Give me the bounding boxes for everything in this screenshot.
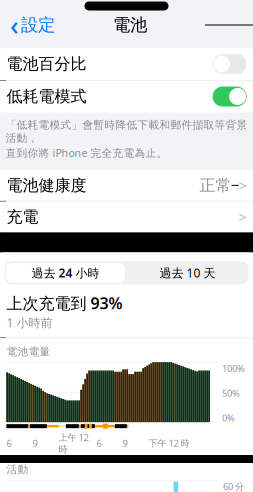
staticText: 低耗電模式 xyxy=(6,87,86,106)
button[interactable]: 過去 24 小時 xyxy=(4,261,126,284)
staticText: 過去 10 天 xyxy=(160,265,216,281)
staticText: 電池 xyxy=(113,14,147,36)
staticText: 下午 12 時 xyxy=(148,437,189,449)
staticText: 9 xyxy=(122,437,127,449)
staticText: 60 分 xyxy=(223,480,244,492)
staticText: 100% xyxy=(222,362,245,375)
staticText: 充電 xyxy=(6,207,38,227)
button[interactable]: 電池健康度 xyxy=(0,170,253,201)
button[interactable]: 過去 10 天 xyxy=(126,261,249,284)
staticText: 上午 12 時 xyxy=(58,431,88,455)
staticText: 6 xyxy=(6,437,11,449)
staticText: 上次充電到 93% xyxy=(6,292,122,314)
staticText: 0% xyxy=(222,412,235,424)
staticText: 正常 xyxy=(200,175,232,195)
staticText: 設定 xyxy=(21,14,55,36)
button[interactable]: ‹ xyxy=(0,3,55,47)
staticText: 6 xyxy=(96,437,101,449)
button[interactable]: 充電 xyxy=(0,201,253,232)
button[interactable]: Off xyxy=(213,54,247,74)
staticText: 「低耗電模式」會暫時降低下載和郵件擷取等背景活動， xyxy=(5,118,247,145)
staticText: 電池健康度 xyxy=(6,175,86,195)
staticText: 電池百分比 xyxy=(6,54,86,74)
staticText: 50% xyxy=(222,387,240,399)
staticText: > xyxy=(239,176,247,195)
staticText: > xyxy=(239,207,247,227)
staticText: 活動 xyxy=(6,463,28,476)
staticText: 直到你將 iPhone 完全充電為止。 xyxy=(5,146,167,160)
staticText: ‹ xyxy=(10,7,19,43)
staticText: 1 小時前 xyxy=(6,315,52,330)
staticText: 電池電量 xyxy=(6,345,50,358)
button[interactable]: On xyxy=(213,86,247,106)
staticText: 過去 24 小時 xyxy=(31,265,99,281)
staticText: 9 xyxy=(32,437,37,449)
